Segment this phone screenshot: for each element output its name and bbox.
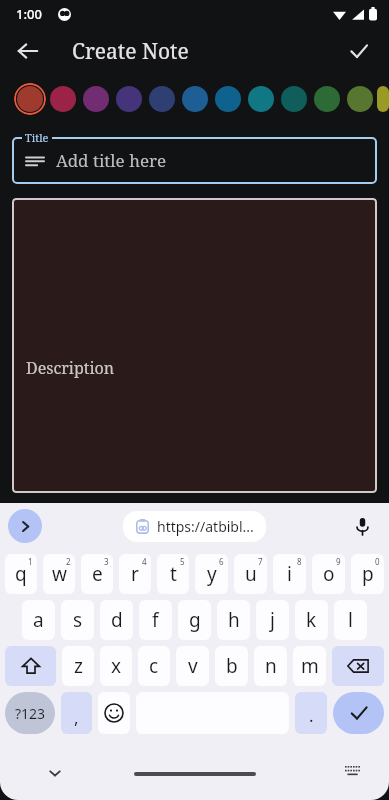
staticText: z [74,653,83,679]
staticText: d [111,607,123,633]
staticText: . [309,704,314,727]
button[interactable]: Colour 6 [179,83,211,115]
staticText: o [323,561,335,587]
button[interactable]: h [217,600,250,640]
button[interactable]: j [256,600,289,640]
button[interactable]: Emoji [98,692,130,734]
staticText: s [73,607,83,633]
staticText: i [287,561,292,587]
button[interactable]: i [273,554,306,594]
staticText: q [15,561,27,587]
staticText: j [270,607,275,633]
button[interactable]: w [43,554,75,594]
button[interactable]: Colour 10 [311,83,343,115]
button[interactable]: u [234,554,267,594]
button[interactable]: o [312,554,345,594]
button[interactable]: Expand suggestions [8,509,42,543]
button[interactable]: Colour 5 [146,83,178,115]
button[interactable]: , [61,692,92,734]
staticText: , [74,706,79,729]
button[interactable]: . [295,692,327,734]
staticText: r [131,561,139,587]
button[interactable]: b [215,646,248,686]
button[interactable]: k [295,600,328,640]
button[interactable]: Switch keyboard [341,762,365,786]
staticText: k [306,607,317,633]
button[interactable]: r [119,554,151,594]
staticText: Create Note [72,37,189,66]
button[interactable]: l [334,600,367,640]
button[interactable]: z [62,646,94,686]
button[interactable]: t [157,554,189,594]
button[interactable]: Colour 9 [278,83,310,115]
button[interactable]: Enter [333,692,384,734]
staticText: ?123 [15,704,46,723]
staticText: w [52,561,67,587]
staticText: c [149,653,159,679]
staticText: 7 [258,556,263,567]
button[interactable]: g [178,600,211,640]
button[interactable]: Back [8,31,48,71]
button[interactable]: v [176,646,209,686]
button[interactable]: Colour 12 [377,83,389,115]
staticText: l [348,607,353,633]
button[interactable]: x [100,646,132,686]
button[interactable]: Voice input [347,511,377,541]
staticText: 4 [142,556,147,567]
button[interactable]: a [22,600,55,640]
staticText: m [301,653,319,679]
button[interactable]: Colour 8 [245,83,277,115]
staticText: 2 [66,556,71,567]
staticText: 6 [219,556,224,567]
staticText: h [228,607,240,633]
staticText: 8 [297,556,302,567]
button[interactable]: Save note [339,31,379,71]
staticText: f [152,607,159,633]
staticText: Description [26,357,115,379]
staticText: 3 [104,556,109,567]
staticText: a [33,607,44,633]
button[interactable]: Colour 2 [47,83,79,115]
staticText: Title [25,130,49,145]
staticText: 0 [375,556,380,567]
staticText: p [362,561,374,587]
staticText: https://atbibl... [157,517,254,536]
staticText: 9 [336,556,341,567]
button[interactable]: Hide keyboard [42,760,68,786]
button[interactable]: Colour 4 [113,83,145,115]
staticText: y [207,561,217,587]
staticText: 1:00 [16,5,42,23]
button[interactable]: d [100,600,133,640]
staticText: 5 [180,556,185,567]
button[interactable]: y [195,554,228,594]
button[interactable]: Colour 3 [80,83,112,115]
button[interactable]: n [254,646,287,686]
button[interactable]: c [138,646,170,686]
button[interactable]: Backspace [332,646,384,686]
button[interactable]: ?123 [5,692,55,734]
button[interactable]: Description [12,198,377,493]
button[interactable]: Colour 11 [344,83,376,115]
button[interactable]: https://atbibl... [123,511,266,542]
staticText: x [111,653,122,679]
button[interactable]: e [81,554,113,594]
button[interactable]: s [61,600,94,640]
staticText: g [189,607,201,633]
staticText: Add title here [56,149,167,172]
button[interactable]: q [5,554,37,594]
staticText: u [245,561,257,587]
button[interactable]: Colour 1 [14,83,46,115]
staticText: 1 [28,556,33,567]
button[interactable]: f [139,600,172,640]
staticText: b [226,653,238,679]
staticText: e [92,561,103,587]
button[interactable]: p [351,554,384,594]
button[interactable]: Shift [5,646,56,686]
staticText: t [170,561,177,587]
button[interactable]: m [293,646,326,686]
staticText: n [265,653,277,679]
staticText: v [188,653,198,679]
button[interactable]: Add title here [12,137,377,184]
button[interactable]: Colour 7 [212,83,244,115]
